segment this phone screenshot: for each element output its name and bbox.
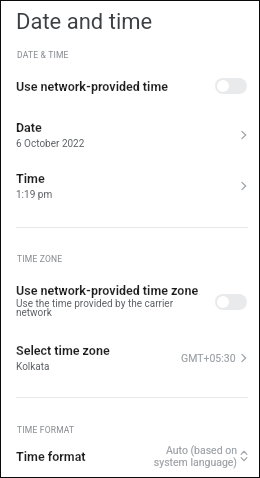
staticText: Date <box>16 120 42 135</box>
staticText: DATE & TIME <box>17 50 69 60</box>
staticText: GMT+05:30 <box>181 352 236 364</box>
staticText: Use network-provided time <box>16 79 168 94</box>
staticText: TIME FORMAT <box>17 425 75 435</box>
staticText: Auto (based on system language) <box>149 444 237 469</box>
staticText: Use network-provided time zone <box>16 283 199 298</box>
staticText: Date and time <box>16 9 153 35</box>
staticText: 1:19 pm <box>16 189 53 201</box>
staticText: Use the time provided by the carrier <box>16 298 174 310</box>
button[interactable]: Time <box>0 163 260 208</box>
button[interactable]: Use network-provided time zone <box>0 276 260 328</box>
staticText: 6 October 2022 <box>16 138 85 150</box>
staticText: TIME ZONE <box>17 254 63 264</box>
button[interactable]: Select time zone <box>0 335 260 380</box>
button[interactable]: Date <box>0 112 260 157</box>
button[interactable]: Toggle <box>215 294 247 310</box>
staticText: Kolkata <box>16 361 50 373</box>
button[interactable]: Time format <box>0 439 260 473</box>
button[interactable]: Toggle <box>215 78 247 94</box>
staticText: Select time zone <box>16 343 110 358</box>
staticText: Time <box>16 171 45 186</box>
staticText: network <box>16 307 52 319</box>
staticText: Time format <box>16 449 149 464</box>
button[interactable]: Use network-provided time <box>0 71 260 101</box>
